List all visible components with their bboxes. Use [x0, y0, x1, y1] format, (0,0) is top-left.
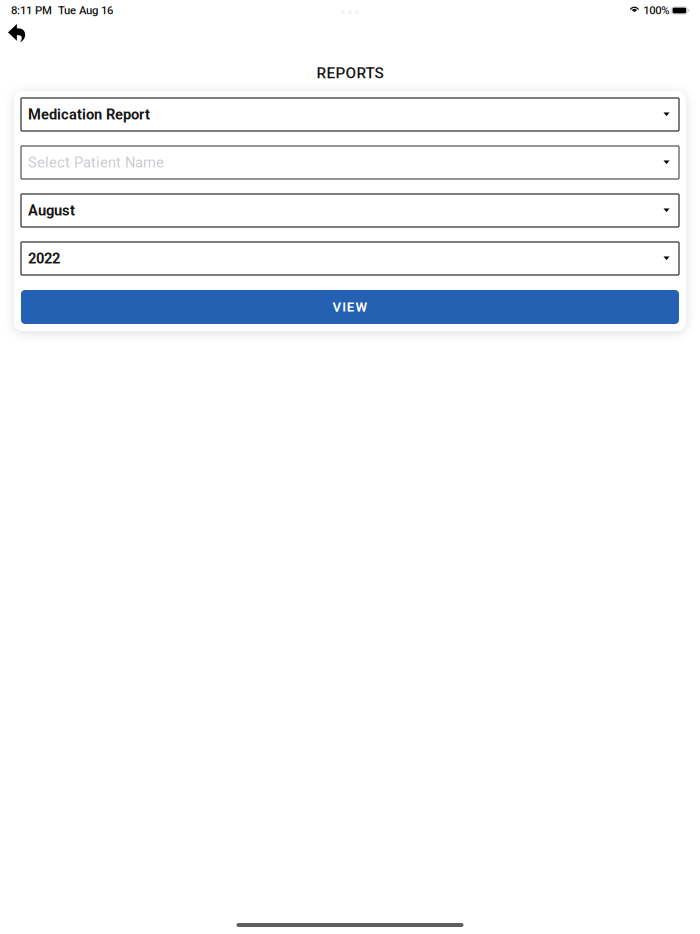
staticText: August — [28, 202, 75, 219]
staticText: VIEW — [333, 299, 367, 315]
button[interactable]: VIEW — [21, 290, 679, 324]
button[interactable]: August — [21, 194, 679, 227]
staticText: REPORTS — [316, 64, 383, 82]
button[interactable]: 2022 — [21, 242, 679, 275]
button[interactable]: Select Patient Name — [21, 146, 679, 179]
button[interactable]: Back — [0, 19, 35, 47]
staticText: Medication Report — [28, 106, 150, 123]
staticText: 2022 — [28, 250, 60, 267]
staticText: Tue Aug 16 — [58, 4, 113, 17]
staticText: 8:11 PM — [11, 4, 52, 17]
button[interactable]: Medication Report — [21, 98, 679, 131]
staticText: 100% — [643, 4, 669, 17]
staticText: Select Patient Name — [28, 154, 164, 171]
